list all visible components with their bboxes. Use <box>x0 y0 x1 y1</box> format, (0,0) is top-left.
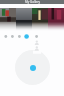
staticText: My Gallery <box>25 0 40 4</box>
button[interactable]: My Gallery <box>0 0 64 4</box>
button[interactable] <box>32 8 48 31</box>
button[interactable] <box>16 8 32 31</box>
button[interactable] <box>0 8 16 31</box>
button[interactable] <box>15 50 50 85</box>
button[interactable] <box>48 8 64 31</box>
